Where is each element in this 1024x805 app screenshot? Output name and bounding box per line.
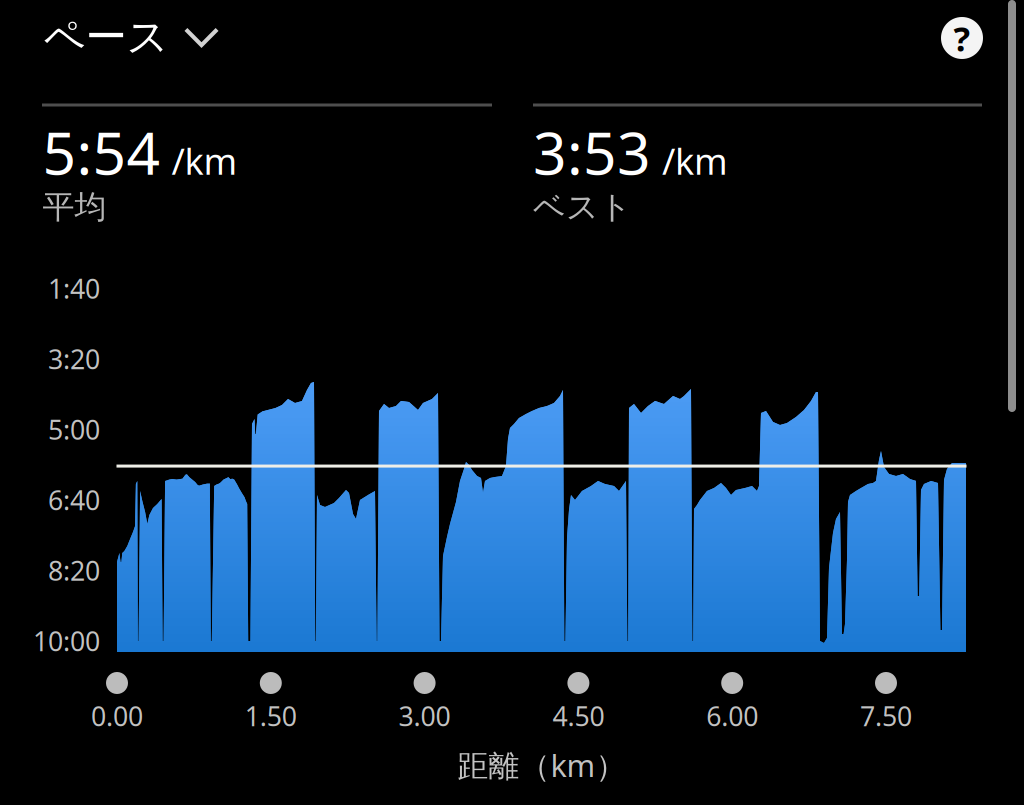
- staticText: 6.00: [706, 698, 758, 734]
- staticText: 10:00: [33, 623, 100, 659]
- button[interactable]: ヘルプ: [941, 17, 983, 59]
- staticText: 1.50: [245, 698, 297, 734]
- staticText: ?: [953, 15, 970, 61]
- staticText: 5:54: [42, 113, 160, 191]
- staticText: 3.00: [399, 698, 451, 734]
- staticText: 8:20: [48, 553, 100, 588]
- staticText: ベスト: [533, 187, 632, 227]
- staticText: 3:20: [48, 341, 100, 377]
- staticText: 0.00: [91, 698, 143, 734]
- button[interactable]: ペース: [43, 12, 218, 62]
- staticText: ペース: [43, 12, 168, 62]
- staticText: 1:40: [48, 271, 100, 306]
- staticText: 7.50: [860, 698, 912, 734]
- staticText: 4.50: [552, 698, 604, 734]
- staticText: 5:00: [48, 412, 100, 447]
- staticText: 6:40: [48, 482, 100, 518]
- staticText: /km: [171, 137, 237, 185]
- staticText: /km: [662, 137, 728, 185]
- staticText: 平均: [42, 187, 106, 227]
- staticText: 3:53: [533, 113, 651, 191]
- staticText: 距離（km）: [457, 745, 626, 785]
